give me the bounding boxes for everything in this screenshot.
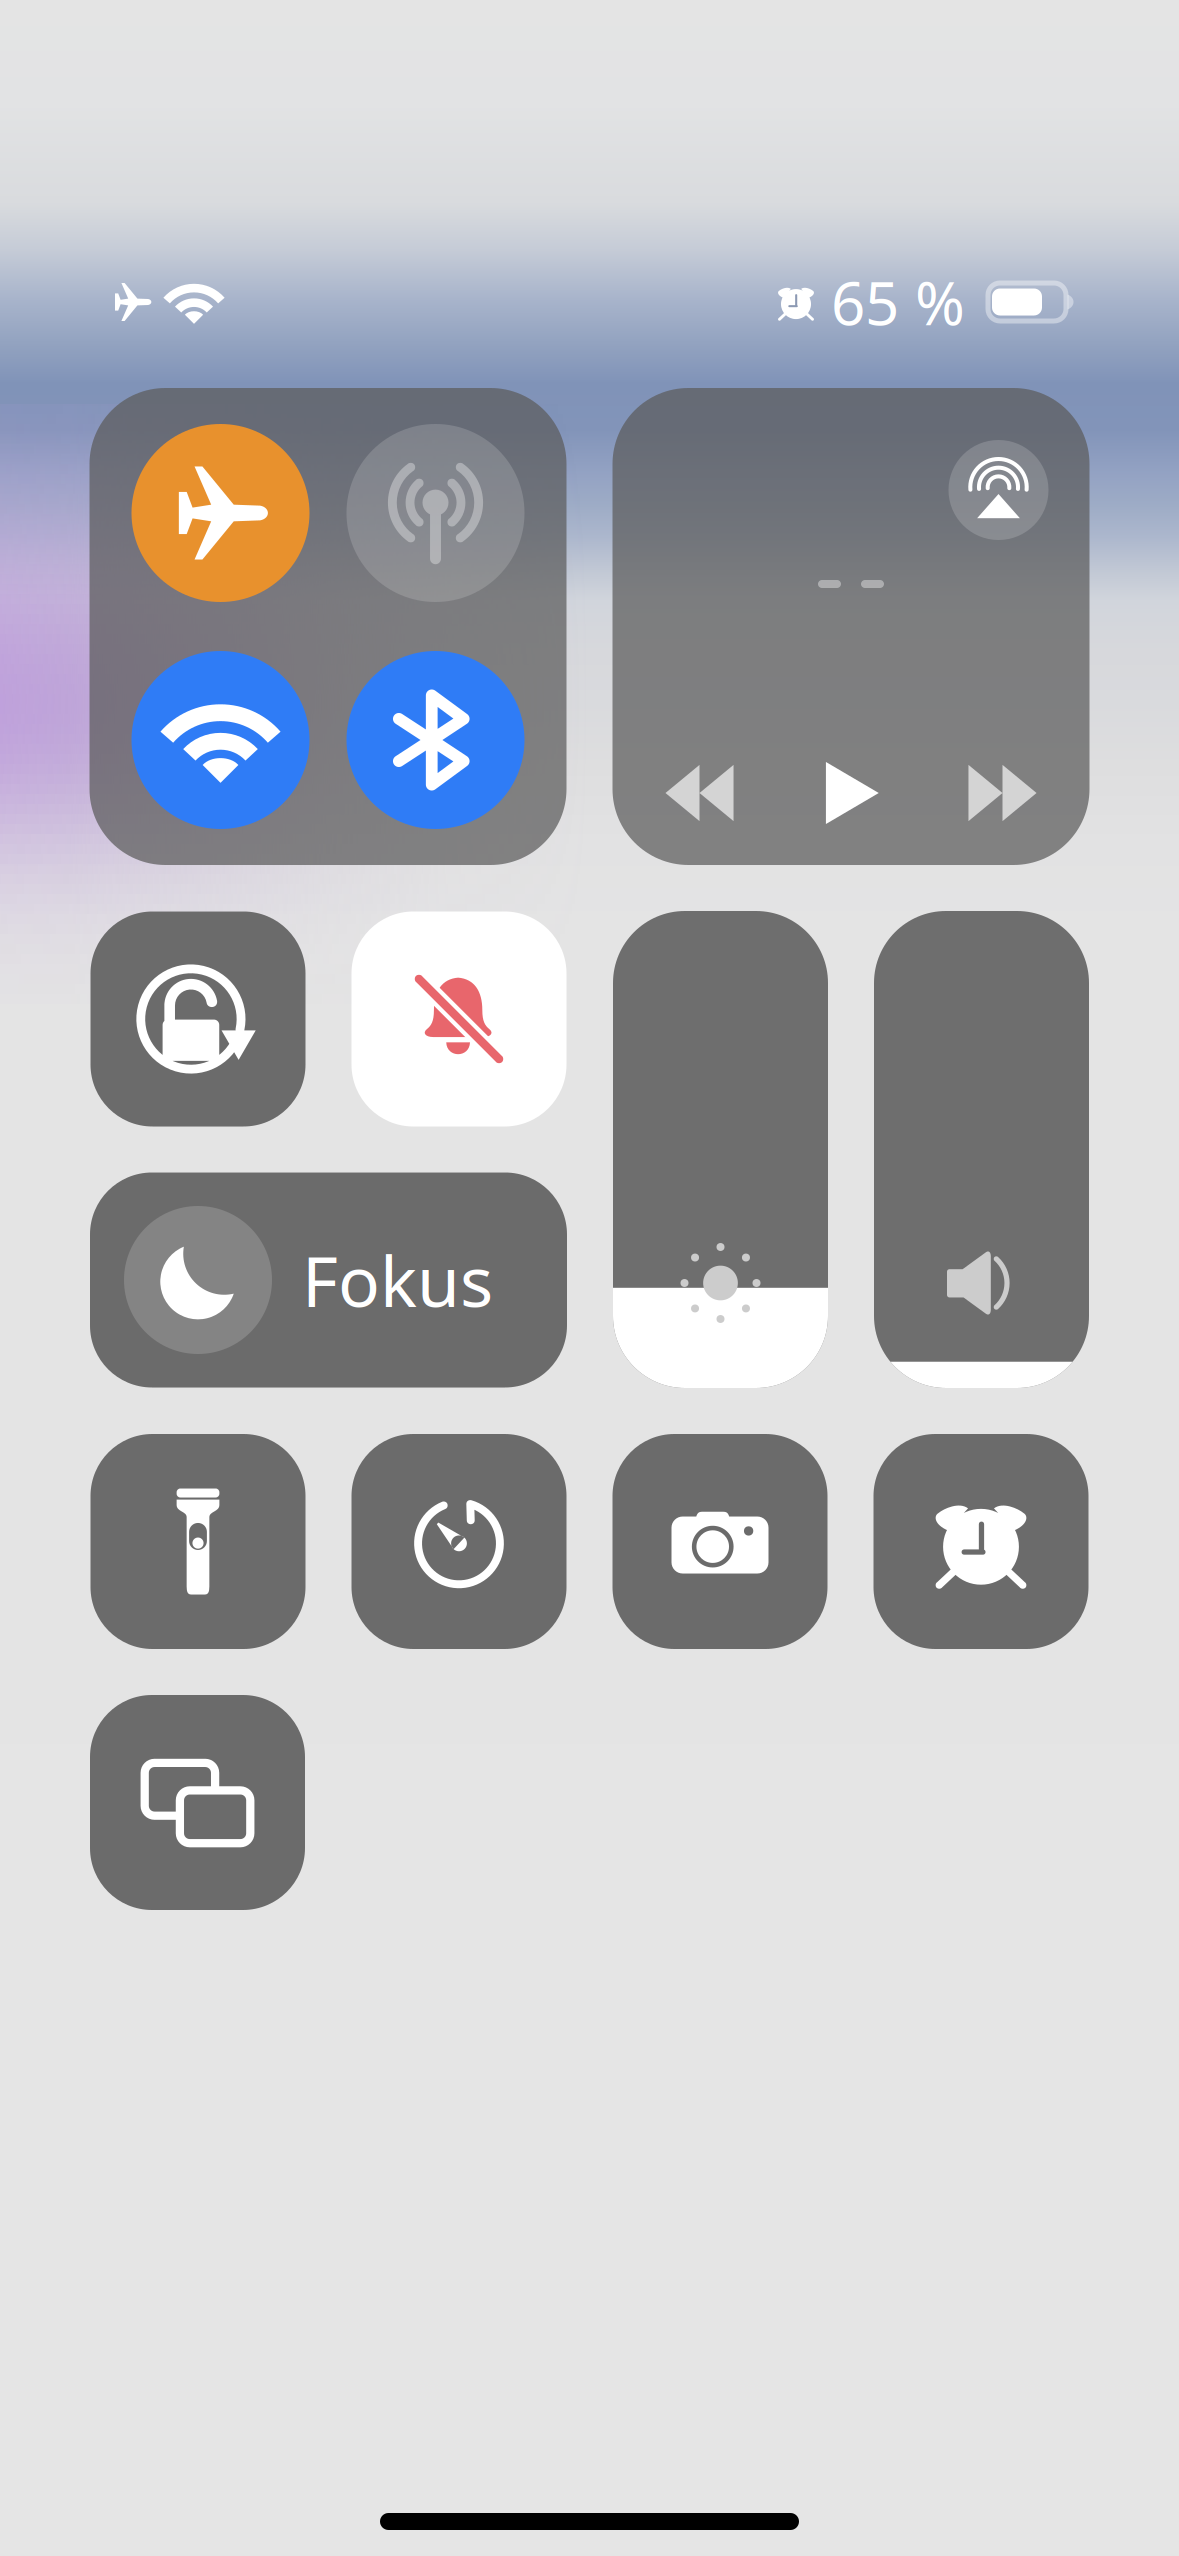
- button[interactable]: Rewind: [645, 743, 753, 843]
- button[interactable]: AirPlay: [948, 440, 1048, 540]
- staticText: Fokus: [302, 1234, 493, 1326]
- button[interactable]: Brightness: [613, 911, 828, 1388]
- button[interactable]: Rotation Lock: [90, 911, 305, 1126]
- button[interactable]: Volume: [874, 911, 1089, 1388]
- button[interactable]: Fast Forward: [948, 743, 1056, 843]
- button[interactable]: Alarm: [873, 1434, 1088, 1649]
- button[interactable]: Flashlight: [90, 1434, 305, 1649]
- button[interactable]: Silent Mode: [351, 911, 566, 1126]
- staticText: 65 %: [831, 262, 965, 342]
- button[interactable]: Camera: [612, 1434, 827, 1649]
- button[interactable]: Screen Mirroring: [90, 1695, 305, 1910]
- button[interactable]: Wi-Fi: [131, 651, 309, 829]
- button[interactable]: Cellular Data: [346, 424, 524, 602]
- button[interactable]: Play: [797, 743, 905, 843]
- button[interactable]: Focus: [90, 1172, 567, 1387]
- button[interactable]: Bluetooth: [346, 651, 524, 829]
- button[interactable]: Timer: [351, 1434, 566, 1649]
- button[interactable]: Airplane Mode: [131, 424, 309, 602]
